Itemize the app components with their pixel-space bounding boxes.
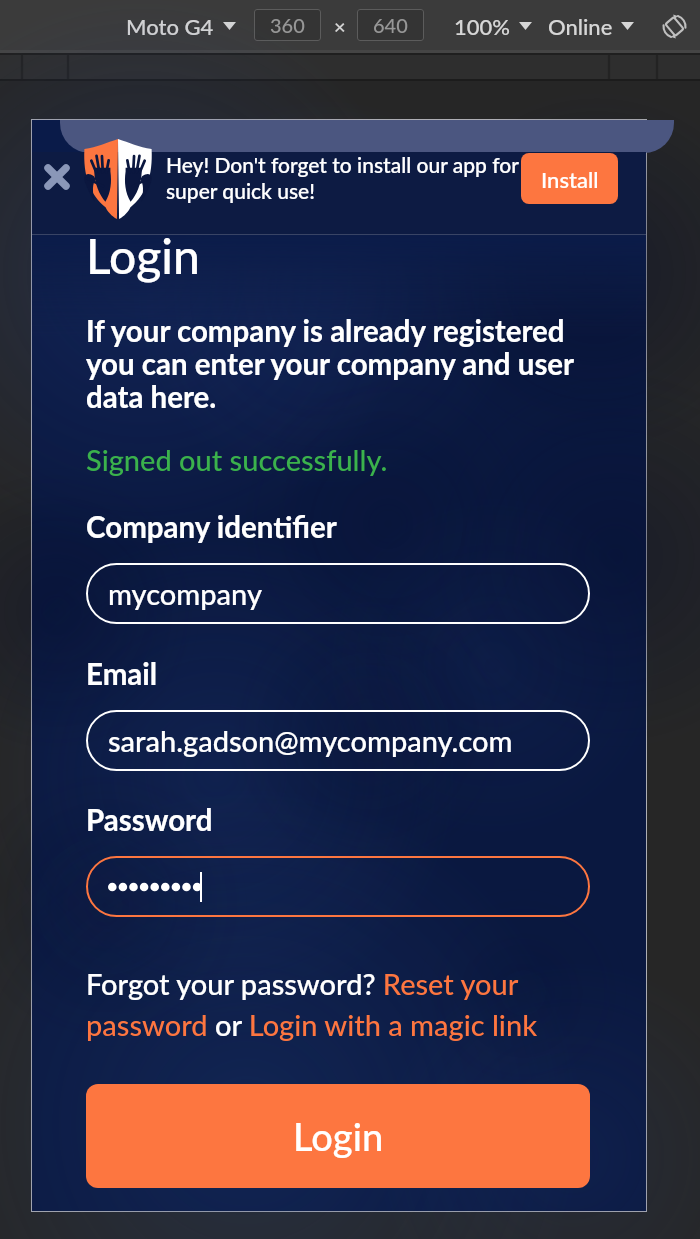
staticText: Company identifier <box>86 509 337 544</box>
staticText: 100% <box>454 13 511 39</box>
staticText: mycompany <box>108 576 263 611</box>
staticText: Install <box>541 166 599 192</box>
staticText: Password <box>86 802 213 837</box>
staticText: Signed out successfully. <box>86 442 388 477</box>
staticText: Login <box>86 227 200 285</box>
staticText: 360 <box>270 13 305 37</box>
button[interactable]: Close banner <box>35 155 79 199</box>
staticText: Moto G4 <box>126 13 214 39</box>
button[interactable]: mycompany <box>86 563 590 624</box>
button[interactable]: 360 <box>254 9 321 41</box>
button[interactable]: Install <box>521 153 618 204</box>
button[interactable]: 640 <box>357 9 424 41</box>
staticText: 640 <box>373 13 408 37</box>
staticText: Online <box>548 13 613 39</box>
button[interactable]: Online <box>548 8 634 43</box>
staticText: × <box>334 14 346 38</box>
button[interactable]: 100% <box>454 8 532 43</box>
staticText: sarah.gadson@mycompany.com <box>108 723 513 758</box>
staticText: Email <box>86 656 158 691</box>
button[interactable]: Login <box>86 1084 590 1188</box>
staticText: Hey! Don't forget to install our app for… <box>166 152 526 203</box>
button[interactable]: Rotate device <box>659 11 689 41</box>
button[interactable]: Forgot your password? Reset your passwor… <box>86 966 551 1042</box>
staticText: If your company is already registered yo… <box>86 313 586 414</box>
button[interactable]: Moto G4 <box>126 8 236 43</box>
button[interactable] <box>86 856 590 917</box>
staticText: Login <box>293 1113 384 1159</box>
button[interactable]: sarah.gadson@mycompany.com <box>86 710 590 771</box>
